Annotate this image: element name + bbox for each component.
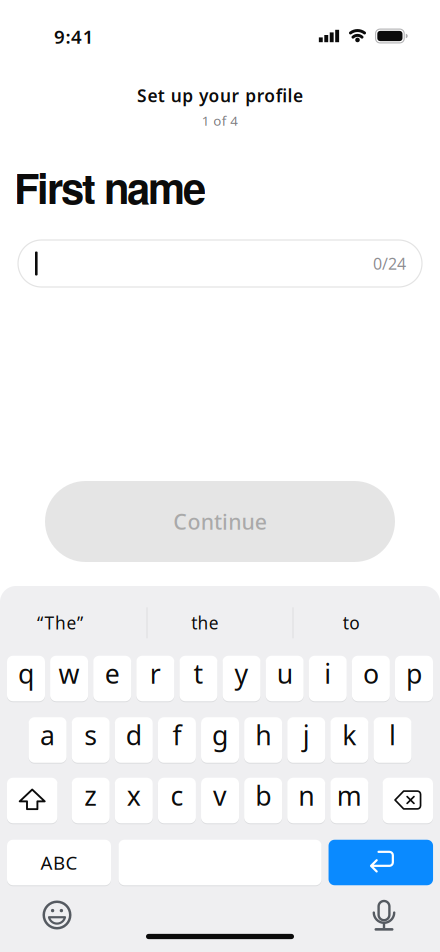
button[interactable]: a [29,717,67,763]
button[interactable]: w [50,655,88,702]
staticText: to [343,611,359,634]
button[interactable]: z [72,777,110,824]
button[interactable]: t [179,655,217,702]
staticText: 1 of 4 [202,112,238,129]
staticText: p [406,656,422,691]
button[interactable] [42,900,72,930]
staticText: a [40,717,55,753]
staticText: e [105,656,120,691]
button[interactable]: e [93,655,131,702]
button[interactable] [373,900,395,931]
button[interactable]: the [135,601,275,645]
staticText: b [255,778,271,813]
button[interactable]: “The” [0,601,130,645]
staticText: i [324,656,331,691]
staticText: y [235,656,249,691]
button[interactable]: r [136,655,174,702]
button[interactable]: y [223,655,261,702]
button[interactable]: to [281,601,421,645]
staticText: m [337,778,362,813]
button[interactable]: i [309,655,347,702]
staticText: j [303,717,310,753]
button[interactable]: o [352,655,390,702]
button[interactable] [7,777,57,824]
staticText: w [59,656,80,691]
button[interactable]: l [373,717,411,763]
staticText: u [277,656,293,691]
button[interactable] [383,777,433,824]
staticText: the [191,611,219,634]
staticText: 0/24 [373,253,406,274]
button[interactable]: 0/24 [18,240,422,287]
staticText: g [212,717,228,753]
button[interactable]: p [395,655,433,702]
button[interactable]: q [7,655,45,702]
staticText: k [342,717,356,753]
button[interactable]: v [201,777,239,824]
staticText: c [170,778,183,813]
button[interactable]: ABC [7,839,111,886]
staticText: r [150,656,161,691]
staticText: ABC [41,850,77,875]
staticText: l [389,717,396,753]
staticText: “The” [37,611,83,634]
button[interactable]: g [201,717,239,763]
staticText: 9:41 [54,24,94,49]
button[interactable]: Continue [45,481,395,562]
button[interactable]: k [330,717,368,763]
button[interactable]: h [244,717,282,763]
staticText: n [298,778,314,813]
staticText: f [172,717,181,753]
button[interactable]: f [158,717,196,763]
staticText: t [193,656,203,691]
staticText: h [255,717,271,753]
button[interactable]: s [72,717,110,763]
button[interactable] [118,839,321,886]
staticText: Set up your profile [137,84,303,107]
button[interactable]: b [244,777,282,824]
button[interactable]: u [266,655,304,702]
button[interactable]: n [287,777,325,824]
button[interactable]: x [115,777,153,824]
button[interactable]: c [158,777,196,824]
button[interactable]: j [287,717,325,763]
button[interactable] [329,839,433,886]
staticText: s [84,717,97,753]
staticText: v [213,778,227,813]
staticText: q [18,656,34,691]
staticText: First name [14,157,206,217]
staticText: Continue [173,507,267,536]
staticText: o [363,656,379,691]
button[interactable]: m [330,777,368,824]
staticText: d [126,717,142,753]
staticText: z [84,778,97,813]
staticText: x [127,778,141,813]
button[interactable]: d [115,717,153,763]
